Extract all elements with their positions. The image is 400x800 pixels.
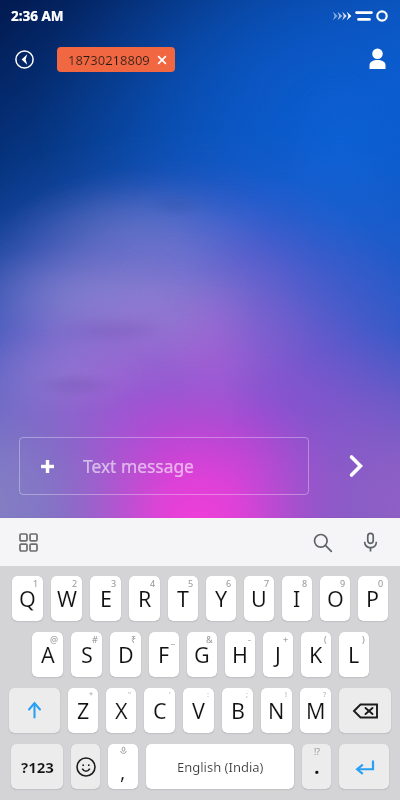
button[interactable]: F (149, 632, 179, 677)
button[interactable]: Search (305, 525, 339, 559)
staticText: A (41, 640, 55, 669)
staticText: 3 (111, 577, 117, 589)
button[interactable]: Y (206, 576, 236, 621)
staticText: . (314, 753, 320, 780)
button[interactable]: Enter (339, 744, 389, 789)
button[interactable]: S (71, 632, 102, 677)
staticText: 18730218809 (68, 51, 150, 69)
staticText: W (57, 584, 77, 613)
button[interactable]: Voice input (353, 525, 387, 559)
staticText: J (275, 640, 281, 669)
staticText: * (89, 689, 94, 699)
staticText: 8 (302, 577, 308, 589)
staticText: 9 (340, 577, 346, 589)
staticText: ' (169, 689, 171, 699)
staticText: English (India) (177, 758, 264, 776)
button[interactable]: G (187, 632, 217, 677)
button[interactable]: D (110, 632, 141, 677)
staticText: + (283, 633, 289, 645)
button[interactable]: Contacts (360, 42, 394, 76)
staticText: Q (19, 584, 36, 613)
staticText: Text message (83, 454, 194, 478)
button[interactable]: Z (68, 688, 98, 733)
staticText: & (206, 633, 213, 645)
staticText: ?123 (21, 757, 54, 777)
staticText: G (194, 640, 210, 669)
button[interactable]: Backspace (339, 688, 391, 733)
staticText: # (92, 633, 98, 645)
staticText: B (231, 696, 245, 725)
button[interactable]: Back (9, 44, 40, 75)
staticText: P (366, 584, 380, 613)
button[interactable]: A (32, 632, 63, 677)
button[interactable]: Emoji (71, 744, 100, 789)
staticText: M (306, 696, 326, 725)
staticText: N (268, 696, 285, 725)
staticText: , (120, 758, 126, 785)
staticText: H (232, 640, 248, 669)
staticText: D (118, 640, 134, 669)
button[interactable]: N (261, 688, 292, 733)
staticText: 4 (150, 577, 156, 589)
staticText: F (158, 640, 170, 669)
staticText: 2 (72, 577, 78, 589)
button[interactable]: Keyboard options (12, 526, 44, 558)
button[interactable]: U (244, 576, 274, 621)
button[interactable]: X (106, 688, 136, 733)
staticText: L (348, 640, 360, 669)
button[interactable]: R (129, 576, 160, 621)
button[interactable]: Comma (108, 744, 138, 789)
staticText: Z (77, 696, 90, 725)
staticText: 6 (226, 577, 232, 589)
button[interactable]: H (225, 632, 255, 677)
staticText: _ (171, 633, 175, 645)
staticText: ₹ (131, 633, 137, 645)
staticText: I (293, 584, 301, 613)
staticText: 1 (33, 577, 39, 589)
button[interactable]: C (144, 688, 175, 733)
staticText: ( (324, 633, 327, 645)
staticText: !? (314, 746, 320, 758)
button[interactable]: M (300, 688, 331, 733)
button[interactable]: I (282, 576, 312, 621)
button[interactable]: L (339, 632, 369, 677)
staticText: - (248, 633, 251, 645)
staticText: V (192, 696, 205, 725)
staticText: ? (323, 689, 327, 699)
button[interactable]: 18730218809 (57, 47, 175, 72)
staticText: ! (285, 689, 288, 699)
staticText: 0 (378, 577, 384, 589)
staticText: K (309, 640, 323, 669)
staticText: ; (246, 689, 249, 699)
button[interactable]: W (51, 576, 82, 621)
button[interactable]: Period (302, 744, 331, 789)
staticText: 5 (188, 577, 194, 589)
staticText: X (115, 696, 128, 725)
button[interactable]: P (358, 576, 388, 621)
button[interactable]: T (168, 576, 198, 621)
staticText: E (100, 584, 112, 613)
button[interactable]: K (301, 632, 331, 677)
button[interactable]: Text message (19, 437, 309, 495)
button[interactable]: B (222, 688, 253, 733)
staticText: 7 (264, 577, 270, 589)
button[interactable]: O (320, 576, 350, 621)
staticText: @ (50, 633, 59, 645)
button[interactable]: Symbols (11, 744, 63, 789)
staticText: R (138, 584, 152, 613)
staticText: " (128, 689, 132, 699)
button[interactable]: Q (12, 576, 43, 621)
button[interactable]: J (263, 632, 293, 677)
button[interactable]: V (183, 688, 214, 733)
staticText: ) (362, 633, 365, 645)
staticText: U (251, 584, 267, 613)
button[interactable]: English (India) (146, 744, 294, 789)
staticText: Y (215, 584, 228, 613)
staticText: S (81, 640, 93, 669)
button[interactable]: Send (332, 442, 380, 490)
staticText: 2:36 AM (11, 7, 64, 25)
button[interactable]: Shift (9, 688, 60, 733)
staticText: T (177, 584, 189, 613)
button[interactable]: E (90, 576, 121, 621)
staticText: C (153, 696, 167, 725)
